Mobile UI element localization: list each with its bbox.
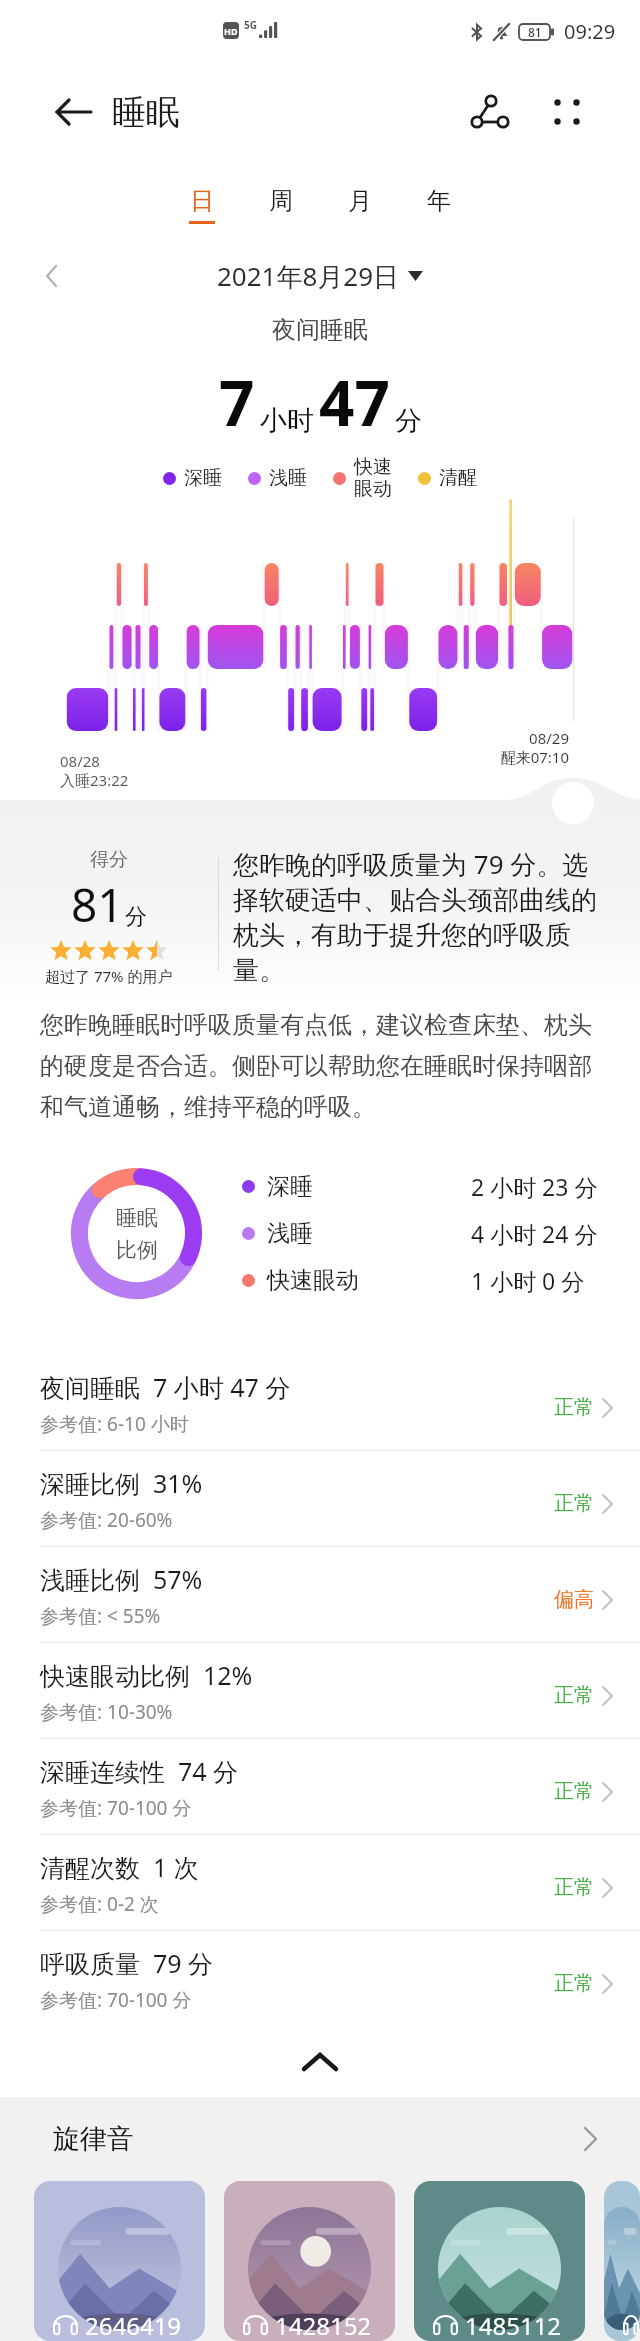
staticText: 参考值: 70-100 分: [40, 1987, 192, 2013]
staticText: 夜间睡眠 7 小时 47 分: [40, 1370, 291, 1404]
staticText: 1428152: [275, 2309, 372, 2341]
button[interactable]: 深睡连续性 74 分: [0, 1739, 640, 1835]
staticText: 分: [395, 404, 422, 438]
staticText: 您昨晚的呼吸质量为 79 分。选择软硬适中、贴合头颈部曲线的枕头，有助于提升您的…: [233, 846, 611, 987]
staticText: 分: [125, 903, 147, 931]
staticText: 旋律音: [53, 2122, 134, 2156]
staticText: 正常: [554, 1875, 594, 1900]
staticText: 4 小时 24 分: [471, 1218, 598, 1249]
staticText: 1 小时 0 分: [471, 1265, 585, 1296]
staticText: HD: [224, 25, 238, 37]
button[interactable]: 年: [399, 162, 478, 248]
staticText: 参考值: 6-10 小时: [40, 1411, 189, 1437]
staticText: 浅睡: [267, 1219, 313, 1248]
staticText: 参考值: 0-2 次: [40, 1891, 159, 1917]
staticText: 超过了 77% 的用户: [45, 966, 173, 986]
button[interactable]: 月: [320, 162, 399, 248]
staticText: 深睡连续性 74 分: [40, 1754, 239, 1788]
staticText: 快速眼动比例 12%: [40, 1658, 253, 1692]
button[interactable]: 2021年8月29日: [217, 258, 423, 294]
staticText: 睡眠: [112, 91, 180, 134]
staticText: 7: [219, 360, 255, 444]
staticText: 正常: [554, 1395, 594, 1420]
staticText: 浅睡比例 57%: [40, 1562, 203, 1596]
staticText: 参考值: < 55%: [40, 1603, 161, 1629]
staticText: 08/29 醒来07:10: [500, 728, 569, 767]
button[interactable]: Previous day: [32, 256, 72, 296]
staticText: 正常: [554, 1491, 594, 1516]
button[interactable]: Back: [50, 89, 96, 135]
staticText: 正常: [554, 1971, 594, 1996]
staticText: 呼吸质量 79 分: [40, 1946, 214, 1980]
button[interactable]: 快速眼动比例 12%: [0, 1643, 640, 1739]
staticText: 5G: [244, 18, 257, 32]
staticText: 47: [319, 360, 390, 444]
staticText: 参考值: 20-60%: [40, 1507, 173, 1533]
staticText: 您昨晚睡眠时呼吸质量有点低，建议检查床垫、枕头的硬度是否合适。侧卧可以帮助您在睡…: [40, 1010, 606, 1122]
staticText: 深睡: [267, 1172, 313, 1201]
staticText: 清醒: [439, 466, 477, 490]
staticText: 1485112: [465, 2309, 562, 2341]
staticText: 年: [427, 186, 451, 216]
staticText: 2646419: [85, 2309, 182, 2341]
staticText: 正常: [554, 1683, 594, 1708]
button[interactable]: 1158822: [604, 2181, 640, 2341]
staticText: 2021年8月29日: [217, 258, 400, 294]
staticText: 81: [71, 873, 124, 936]
button[interactable]: More options: [543, 88, 591, 136]
button[interactable]: 浅睡比例 57%: [0, 1547, 640, 1643]
staticText: 参考值: 10-30%: [40, 1699, 173, 1725]
button[interactable]: 清醒次数 1 次: [0, 1835, 640, 1931]
staticText: 快速眼动: [267, 1266, 359, 1295]
staticText: 清醒次数 1 次: [40, 1850, 199, 1884]
staticText: 睡眠 比例: [116, 1205, 158, 1263]
staticText: 快速 眼动: [354, 455, 392, 501]
button[interactable]: 日: [162, 162, 241, 248]
staticText: 深睡: [184, 466, 222, 490]
staticText: 月: [348, 186, 372, 216]
staticText: 小时: [260, 404, 314, 438]
staticText: 81: [528, 24, 542, 40]
staticText: 偏高: [554, 1587, 594, 1612]
button[interactable]: Share: [462, 88, 510, 136]
staticText: 深睡比例 31%: [40, 1466, 203, 1500]
button[interactable]: 夜间睡眠 7 小时 47 分: [0, 1355, 640, 1451]
staticText: 夜间睡眠: [272, 315, 368, 345]
staticText: 08/28 入睡23:22: [60, 751, 129, 790]
button[interactable]: 1485112: [414, 2181, 585, 2341]
button[interactable]: 呼吸质量 79 分: [0, 1931, 640, 2027]
button[interactable]: 深睡比例 31%: [0, 1451, 640, 1547]
staticText: 正常: [554, 1779, 594, 1804]
staticText: 得分: [90, 848, 128, 872]
staticText: 日: [190, 186, 214, 216]
button[interactable]: 2646419: [34, 2181, 205, 2341]
button[interactable]: 1428152: [224, 2181, 395, 2341]
button[interactable]: 周: [241, 162, 320, 248]
button[interactable]: 旋律音: [0, 2097, 640, 2181]
staticText: 09:29: [564, 18, 616, 45]
button[interactable]: Collapse: [0, 2027, 640, 2097]
staticText: 浅睡: [269, 466, 307, 490]
staticText: 参考值: 70-100 分: [40, 1795, 192, 1821]
staticText: 周: [269, 186, 293, 216]
staticText: 2 小时 23 分: [471, 1171, 598, 1202]
